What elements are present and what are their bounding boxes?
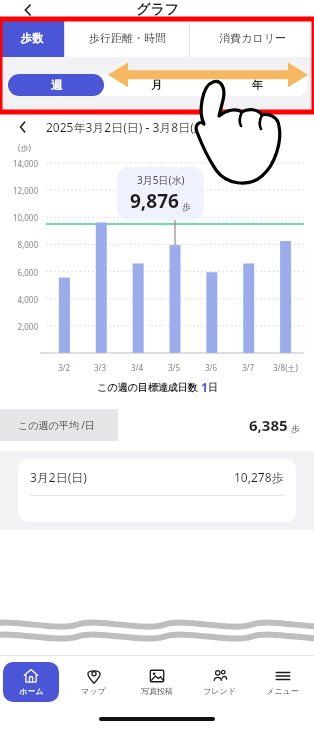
staticText: 月	[151, 78, 162, 92]
staticText: 8,000	[0, 239, 38, 250]
staticText: 3/3	[94, 362, 107, 373]
staticText: 3/2	[58, 362, 71, 373]
staticText: ホーム	[19, 686, 44, 696]
staticText: 2,000	[0, 321, 38, 332]
staticText: フレンド	[203, 686, 236, 696]
staticText: 10,278歩	[234, 469, 284, 485]
staticText: 1	[201, 379, 208, 395]
staticText: 歩	[291, 423, 300, 434]
button[interactable]: 週	[8, 74, 104, 96]
staticText: 14,000	[0, 158, 38, 169]
button[interactable]: Previous week	[14, 118, 32, 136]
staticText: 歩行距離・時間	[89, 31, 166, 45]
staticText: 週	[51, 78, 62, 92]
staticText: 3月5日(水)	[137, 173, 185, 187]
button[interactable]: マップ	[62, 656, 125, 708]
staticText: 6,000	[0, 267, 38, 278]
staticText: この週の目標達成日数	[97, 380, 201, 394]
staticText: グラフ	[136, 1, 179, 19]
staticText: 3/4	[131, 362, 144, 373]
staticText: 3/7	[242, 362, 255, 373]
button[interactable]: 消費カロリー	[190, 19, 314, 57]
button[interactable]: 月	[108, 74, 205, 96]
staticText: 9,876	[130, 188, 179, 214]
button[interactable]: 3月2日(日)	[30, 459, 284, 495]
staticText: 年	[252, 78, 263, 92]
staticText: 4,000	[0, 294, 38, 305]
staticText: 3月2日(日)	[30, 469, 87, 485]
staticText: マップ	[81, 686, 106, 696]
staticText: 3/6	[205, 362, 218, 373]
button[interactable]: この週の平均 /日	[0, 409, 314, 441]
button[interactable]: メニュー	[251, 656, 314, 708]
staticText: 3/5	[168, 362, 181, 373]
button[interactable]: 歩行距離・時間	[65, 19, 189, 57]
staticText: 3/8(土)	[273, 362, 298, 373]
button[interactable]: 写真投稿	[125, 656, 188, 708]
button[interactable]: 歩数	[0, 19, 64, 57]
staticText: 日	[208, 381, 218, 394]
button[interactable]: フレンド	[188, 656, 251, 708]
staticText: 歩	[182, 201, 191, 212]
staticText: 10,000	[0, 212, 38, 223]
staticText: 写真投稿	[141, 686, 173, 696]
button[interactable]: 年	[209, 74, 306, 96]
staticText: この週の平均 /日	[18, 418, 96, 432]
staticText: 歩数	[21, 31, 43, 45]
staticText: (歩)	[18, 142, 31, 153]
button[interactable]: Back	[18, 0, 38, 20]
staticText: メニュー	[266, 686, 299, 696]
staticText: 2025年3月2日(日) - 3月8日(土)	[46, 119, 210, 135]
staticText: 消費カロリー	[219, 31, 286, 45]
button[interactable]: ホーム	[0, 656, 62, 708]
staticText: 6,385	[249, 415, 288, 435]
staticText: 12,000	[0, 185, 38, 196]
